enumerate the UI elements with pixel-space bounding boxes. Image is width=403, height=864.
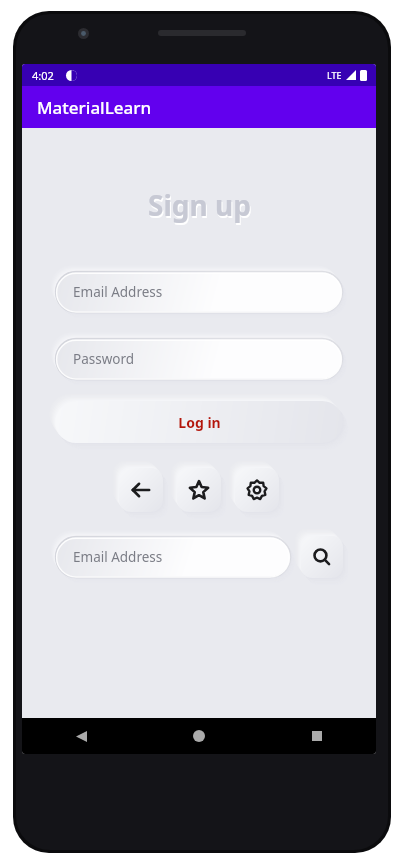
staticText: Email Address [73, 283, 163, 301]
staticText: Log in [178, 413, 221, 432]
staticText: Email Address [73, 548, 163, 566]
staticText: LTE [327, 69, 342, 81]
button[interactable]: Recent apps [304, 723, 330, 749]
button[interactable]: Log in [55, 401, 343, 443]
staticText: 4:02 [32, 68, 54, 83]
button[interactable]: Back [68, 723, 94, 749]
button[interactable]: Favorite [177, 468, 221, 512]
staticText: Sign up [149, 188, 252, 226]
staticText: Sign up [148, 186, 251, 224]
button[interactable]: Search [301, 536, 343, 578]
button[interactable]: Home [186, 723, 212, 749]
button[interactable]: Back [119, 468, 163, 512]
staticText: MaterialLearn [37, 96, 152, 119]
button[interactable]: Settings [235, 468, 279, 512]
staticText: Password [73, 350, 135, 368]
